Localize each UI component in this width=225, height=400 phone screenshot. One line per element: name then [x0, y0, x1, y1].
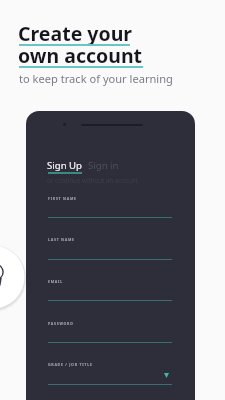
staticText: to keep track of your learning — [19, 71, 173, 86]
staticText: PASSWORD — [48, 321, 74, 326]
staticText: GRADE / JOB TITLE — [48, 362, 93, 367]
button[interactable]: Sign in — [88, 159, 119, 172]
staticText: LAST NAME — [48, 237, 75, 242]
staticText: FIRST NAME — [48, 196, 77, 201]
staticText: own account — [18, 42, 143, 69]
button[interactable]: Learning tip — [0, 242, 28, 312]
staticText: Create your — [18, 20, 133, 47]
button[interactable]: Open grade or job title list — [164, 373, 169, 378]
button[interactable]: or continue without an account — [47, 176, 138, 184]
staticText: EMAIL — [48, 279, 63, 284]
button[interactable]: Sign Up — [47, 159, 82, 172]
staticText: Sign in — [88, 159, 119, 172]
staticText: Sign Up — [47, 159, 82, 172]
